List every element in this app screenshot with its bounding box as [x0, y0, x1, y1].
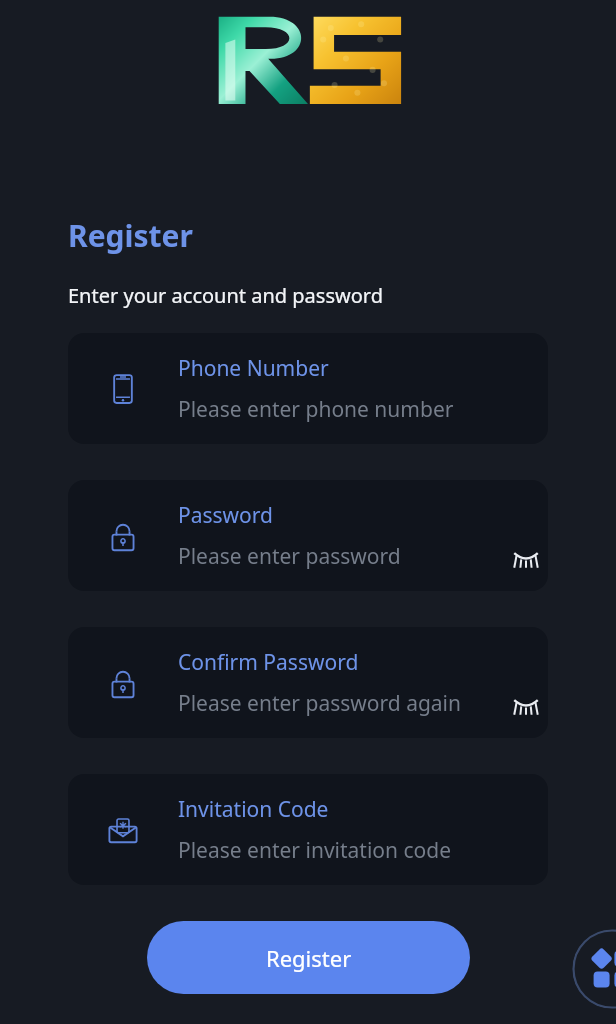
button[interactable]: Phone Number	[68, 333, 548, 444]
staticText: Please enter phone number	[178, 395, 454, 424]
staticText: Register	[266, 943, 352, 973]
button[interactable]: Invitation Code	[68, 774, 548, 885]
staticText: Please enter password again	[178, 689, 462, 718]
button[interactable]: Register	[147, 921, 470, 994]
staticText: Invitation Code	[178, 795, 329, 824]
staticText: Password	[178, 501, 273, 530]
staticText: Please enter invitation code (optional)	[178, 836, 530, 865]
button[interactable]: Apps menu	[572, 929, 616, 1009]
button[interactable]: Password	[68, 480, 548, 591]
staticText: Please enter password	[178, 542, 401, 571]
staticText: Phone Number	[178, 354, 329, 383]
button[interactable]: Confirm Password	[68, 627, 548, 738]
staticText: Register	[68, 215, 193, 256]
button[interactable]: Toggle password visibility	[504, 681, 548, 725]
staticText: Confirm Password	[178, 648, 359, 677]
button[interactable]: Toggle password visibility	[504, 534, 548, 578]
staticText: Enter your account and password	[68, 282, 383, 309]
